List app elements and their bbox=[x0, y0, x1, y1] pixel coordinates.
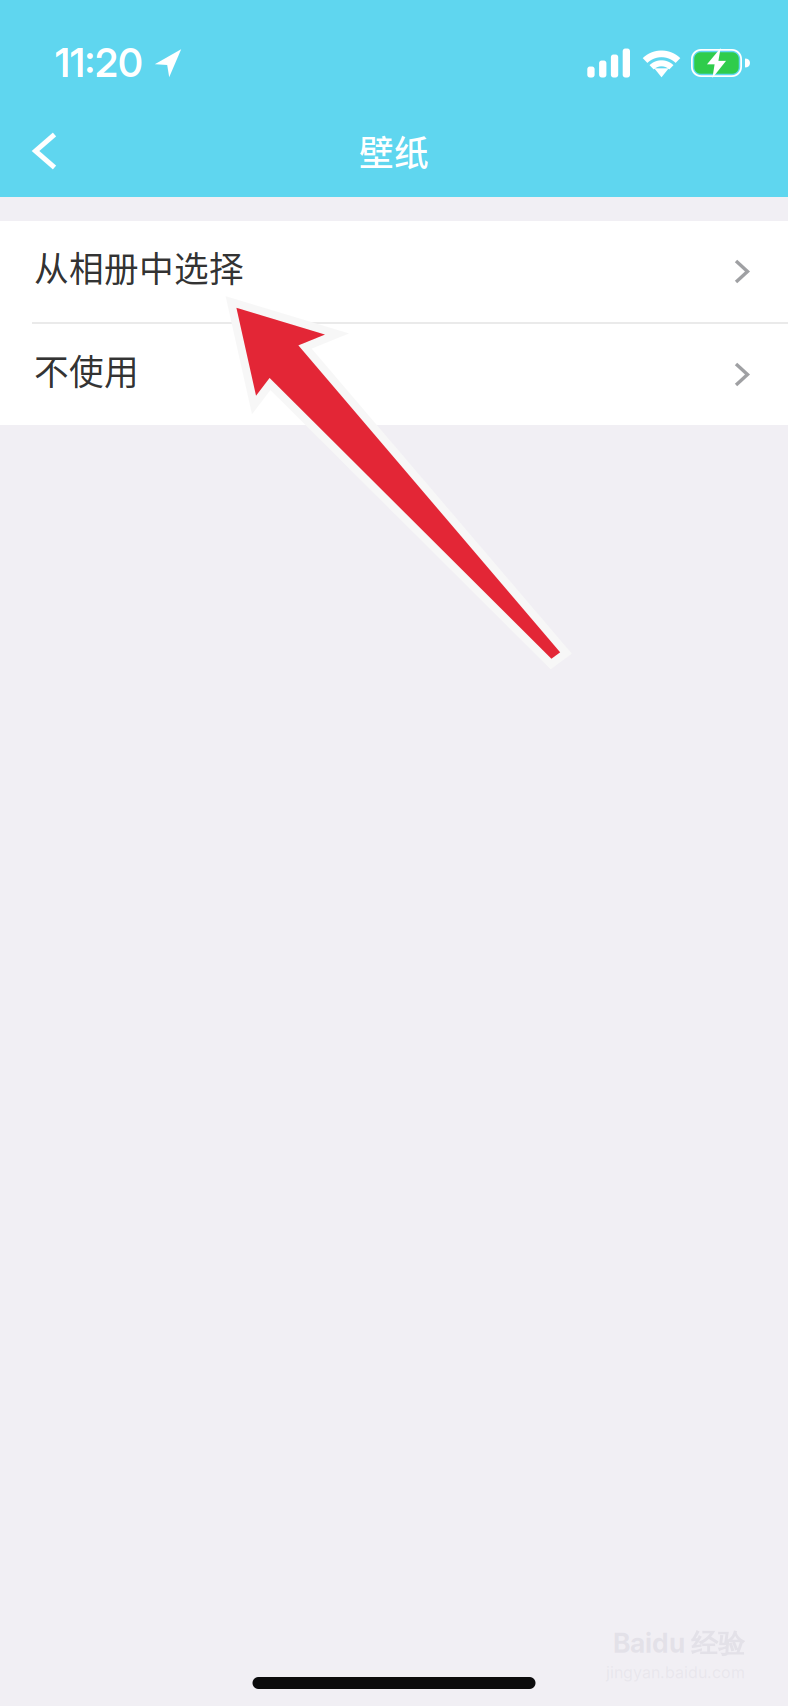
staticText: Baidu 经验 bbox=[613, 1627, 745, 1661]
staticText: 不使用 bbox=[34, 345, 139, 395]
staticText: 从相册中选择 bbox=[34, 242, 244, 292]
staticText: 壁纸 bbox=[359, 126, 429, 176]
staticText: 11:20 bbox=[55, 40, 143, 86]
button[interactable]: 从相册中选择 bbox=[0, 221, 788, 322]
button[interactable]: Back bbox=[0, 116, 83, 186]
button[interactable]: 不使用 bbox=[0, 324, 788, 425]
